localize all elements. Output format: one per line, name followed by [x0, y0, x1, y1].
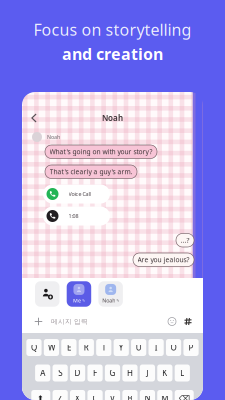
button[interactable]: Emoji	[164, 313, 180, 329]
button[interactable]: Z	[52, 390, 68, 400]
button[interactable]: V	[105, 390, 120, 400]
staticText: G	[109, 368, 115, 378]
button[interactable]: F	[87, 364, 103, 381]
button[interactable]: ⬆	[31, 390, 50, 400]
staticText: A	[40, 368, 45, 378]
button[interactable]: Noah	[98, 281, 123, 307]
staticText: and creation	[62, 43, 163, 64]
staticText: Are you jealous?	[137, 255, 189, 264]
button[interactable]: D	[70, 364, 85, 381]
button[interactable]: N	[140, 390, 155, 400]
staticText: That's clearly a guy's arm.	[49, 167, 132, 176]
staticText: X	[75, 393, 80, 400]
staticText: ...?	[180, 236, 189, 245]
staticText: What's going on with your story?	[49, 147, 152, 156]
staticText: Noah	[102, 113, 123, 123]
button[interactable]: C	[87, 390, 103, 400]
staticText: F	[93, 368, 97, 378]
button[interactable]: B	[122, 390, 137, 400]
staticText: R	[84, 342, 89, 353]
staticText: ✎	[82, 298, 85, 303]
button[interactable]: X	[70, 390, 85, 400]
button[interactable]: K	[157, 364, 172, 381]
staticText: U	[136, 342, 142, 353]
button[interactable]: L	[175, 364, 190, 381]
staticText: ✎	[116, 298, 119, 303]
button[interactable]: S	[52, 364, 68, 381]
button[interactable]: O	[166, 339, 181, 356]
staticText: Y	[119, 342, 124, 353]
staticText: J	[146, 368, 148, 378]
staticText: L	[180, 368, 184, 378]
staticText: ⬆	[37, 394, 44, 400]
button[interactable]: I	[148, 339, 164, 356]
staticText: Z	[58, 393, 63, 400]
button[interactable]: Add attachment	[30, 313, 47, 330]
staticText: P	[188, 342, 193, 353]
staticText: S	[58, 368, 62, 378]
staticText: Voice Call	[68, 190, 90, 198]
staticText: Noah	[47, 133, 60, 141]
button[interactable]: ⌫	[175, 390, 194, 400]
button[interactable]: G	[105, 364, 120, 381]
staticText: B	[127, 393, 132, 400]
staticText: 1:08	[68, 212, 78, 220]
button[interactable]: J	[140, 364, 155, 381]
staticText: D	[75, 368, 81, 378]
button[interactable]: Y	[114, 339, 129, 356]
button[interactable]: Back	[26, 110, 42, 126]
button[interactable]: A	[35, 364, 50, 381]
button[interactable]: W	[44, 339, 59, 356]
button[interactable]: Me	[67, 281, 91, 307]
staticText: E	[67, 342, 71, 353]
staticText: Focus on storytelling	[33, 19, 191, 40]
button[interactable]: M	[157, 390, 172, 400]
staticText: 메시지 입력	[51, 317, 88, 326]
staticText: O	[171, 342, 177, 353]
staticText: Me	[73, 297, 81, 304]
staticText: T	[102, 342, 106, 353]
button[interactable]: T	[96, 339, 111, 356]
staticText: ⌫	[179, 394, 190, 400]
button[interactable]: P	[183, 339, 199, 356]
staticText: M	[161, 393, 168, 400]
staticText: Noah	[102, 297, 115, 304]
button[interactable]: Add person	[35, 281, 59, 307]
staticText: K	[162, 368, 167, 378]
button[interactable]: Q	[26, 339, 42, 356]
staticText: V	[110, 393, 115, 400]
staticText: H	[127, 368, 133, 378]
staticText: C	[92, 393, 97, 400]
staticText: W	[48, 342, 55, 353]
button[interactable]: R	[79, 339, 94, 356]
button[interactable]: Stickers	[180, 313, 196, 329]
button[interactable]: E	[61, 339, 76, 356]
staticText: Q	[31, 342, 37, 353]
button[interactable]: U	[131, 339, 146, 356]
button[interactable]: H	[122, 364, 137, 381]
staticText: I	[155, 342, 158, 353]
staticText: N	[144, 393, 150, 400]
